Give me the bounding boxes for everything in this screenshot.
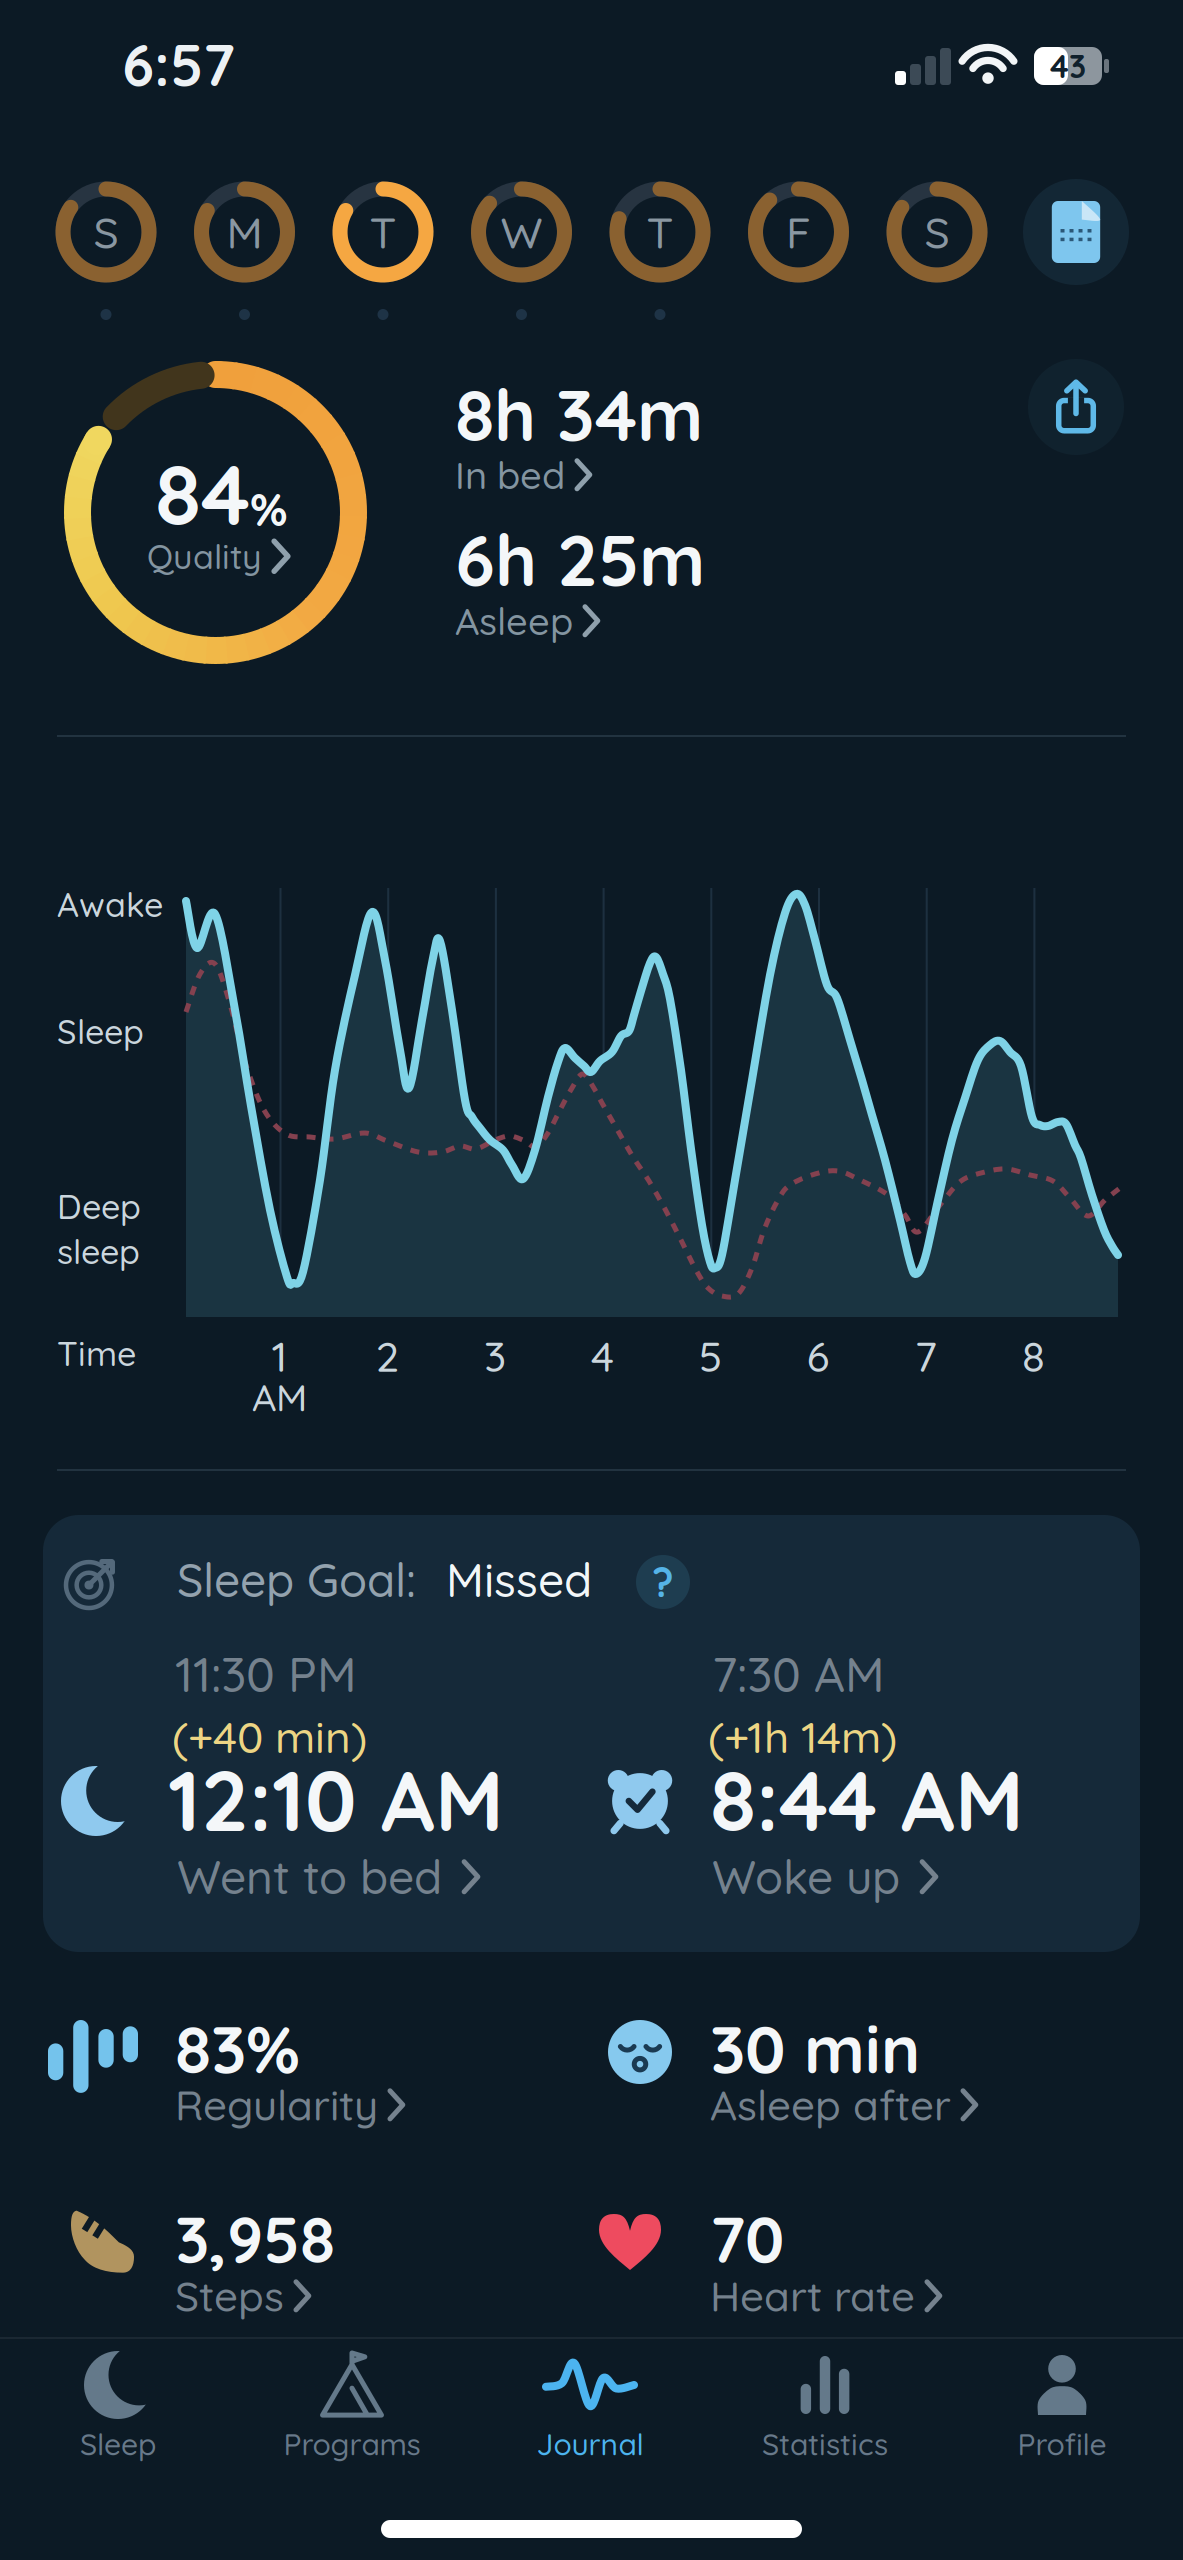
staticText: T xyxy=(646,204,673,259)
staticText: T xyxy=(369,204,396,259)
staticText: 6h 25m xyxy=(455,514,705,604)
staticText: % xyxy=(250,480,288,537)
staticText: ? xyxy=(652,1557,673,1607)
button[interactable]: 30 min xyxy=(608,2007,1148,2147)
staticText: Sleep Goal: xyxy=(177,1551,416,1608)
button[interactable]: T xyxy=(610,182,710,282)
staticText: Missed xyxy=(446,1551,592,1608)
button[interactable]: 3,958 xyxy=(70,2198,640,2338)
staticText: Awake xyxy=(57,883,163,925)
staticText: Went to bed xyxy=(177,1848,442,1905)
button[interactable]: Share xyxy=(1028,359,1124,455)
staticText: 7:30 AM xyxy=(712,1644,885,1704)
button[interactable]: Quality xyxy=(147,535,290,577)
staticText: 3,958 xyxy=(175,2199,335,2279)
button[interactable]: Statistics xyxy=(725,2352,925,2482)
staticText: sleep xyxy=(57,1230,140,1272)
staticText: F xyxy=(786,204,811,259)
staticText: Heart rate xyxy=(710,2270,915,2322)
staticText: 6 xyxy=(806,1330,829,1382)
staticText: 11:30 PM xyxy=(175,1644,357,1704)
staticText: Steps xyxy=(175,2270,284,2322)
staticText: 12:10 AM xyxy=(168,1747,504,1852)
staticText: Time xyxy=(57,1332,136,1374)
staticText: Woke up xyxy=(712,1848,900,1905)
staticText: S xyxy=(93,204,118,259)
staticText: AM xyxy=(252,1373,307,1421)
staticText: 5 xyxy=(699,1330,722,1382)
button[interactable]: Woke up xyxy=(712,1848,930,1905)
button[interactable]: Profile xyxy=(962,2352,1162,2482)
button[interactable]: Programs xyxy=(252,2352,452,2482)
button[interactable]: S xyxy=(887,182,987,282)
staticText: Statistics xyxy=(762,2425,888,2463)
staticText: M xyxy=(226,204,262,259)
staticText: 1 xyxy=(271,1330,287,1382)
staticText: 70 xyxy=(710,2199,784,2279)
staticText: Sleep xyxy=(80,2425,156,2463)
staticText: (+40 min) xyxy=(172,1709,367,1764)
staticText: Quality xyxy=(147,535,262,577)
staticText: Asleep after xyxy=(710,2079,951,2131)
staticText: Programs xyxy=(283,2425,420,2463)
button[interactable]: Sleep goal help xyxy=(636,1555,690,1609)
staticText: (+1h 14m) xyxy=(708,1709,897,1764)
button[interactable]: 70 xyxy=(599,2198,1139,2338)
staticText: 7 xyxy=(915,1330,937,1382)
staticText: Profile xyxy=(1017,2425,1106,2463)
staticText: 84 xyxy=(155,441,250,546)
staticText: Sleep xyxy=(57,1010,144,1052)
staticText: 4 xyxy=(591,1330,614,1382)
staticText: W xyxy=(500,204,542,259)
button[interactable]: F xyxy=(748,182,848,282)
button[interactable]: M xyxy=(194,182,294,282)
staticText: S xyxy=(924,204,949,259)
staticText: In bed xyxy=(455,451,565,498)
button[interactable]: Went to bed xyxy=(177,1848,472,1905)
staticText: 30 min xyxy=(710,2007,920,2090)
button[interactable]: In bed xyxy=(455,451,592,498)
staticText: Regularity xyxy=(175,2079,378,2131)
button[interactable]: Journal xyxy=(490,2352,690,2482)
button[interactable]: S xyxy=(56,182,156,282)
staticText: Asleep xyxy=(455,597,573,644)
staticText: 8:44 AM xyxy=(710,1747,1024,1852)
staticText: 2 xyxy=(376,1330,399,1382)
button[interactable]: Sleep report xyxy=(1023,179,1129,285)
button[interactable]: Sleep xyxy=(18,2352,218,2482)
staticText: Journal xyxy=(536,2425,643,2463)
button[interactable]: Asleep xyxy=(455,597,600,644)
staticText: Deep xyxy=(57,1185,141,1227)
staticText: 6:57 xyxy=(122,28,235,100)
button[interactable]: W xyxy=(471,182,571,282)
staticText: 3 xyxy=(484,1330,506,1382)
button[interactable]: 83% xyxy=(46,2007,616,2147)
staticText: 8 xyxy=(1022,1330,1045,1382)
staticText: 8h 34m xyxy=(455,369,703,459)
button[interactable]: T xyxy=(333,182,433,282)
staticText: 43 xyxy=(1050,46,1086,86)
staticText: 83% xyxy=(175,2007,300,2090)
